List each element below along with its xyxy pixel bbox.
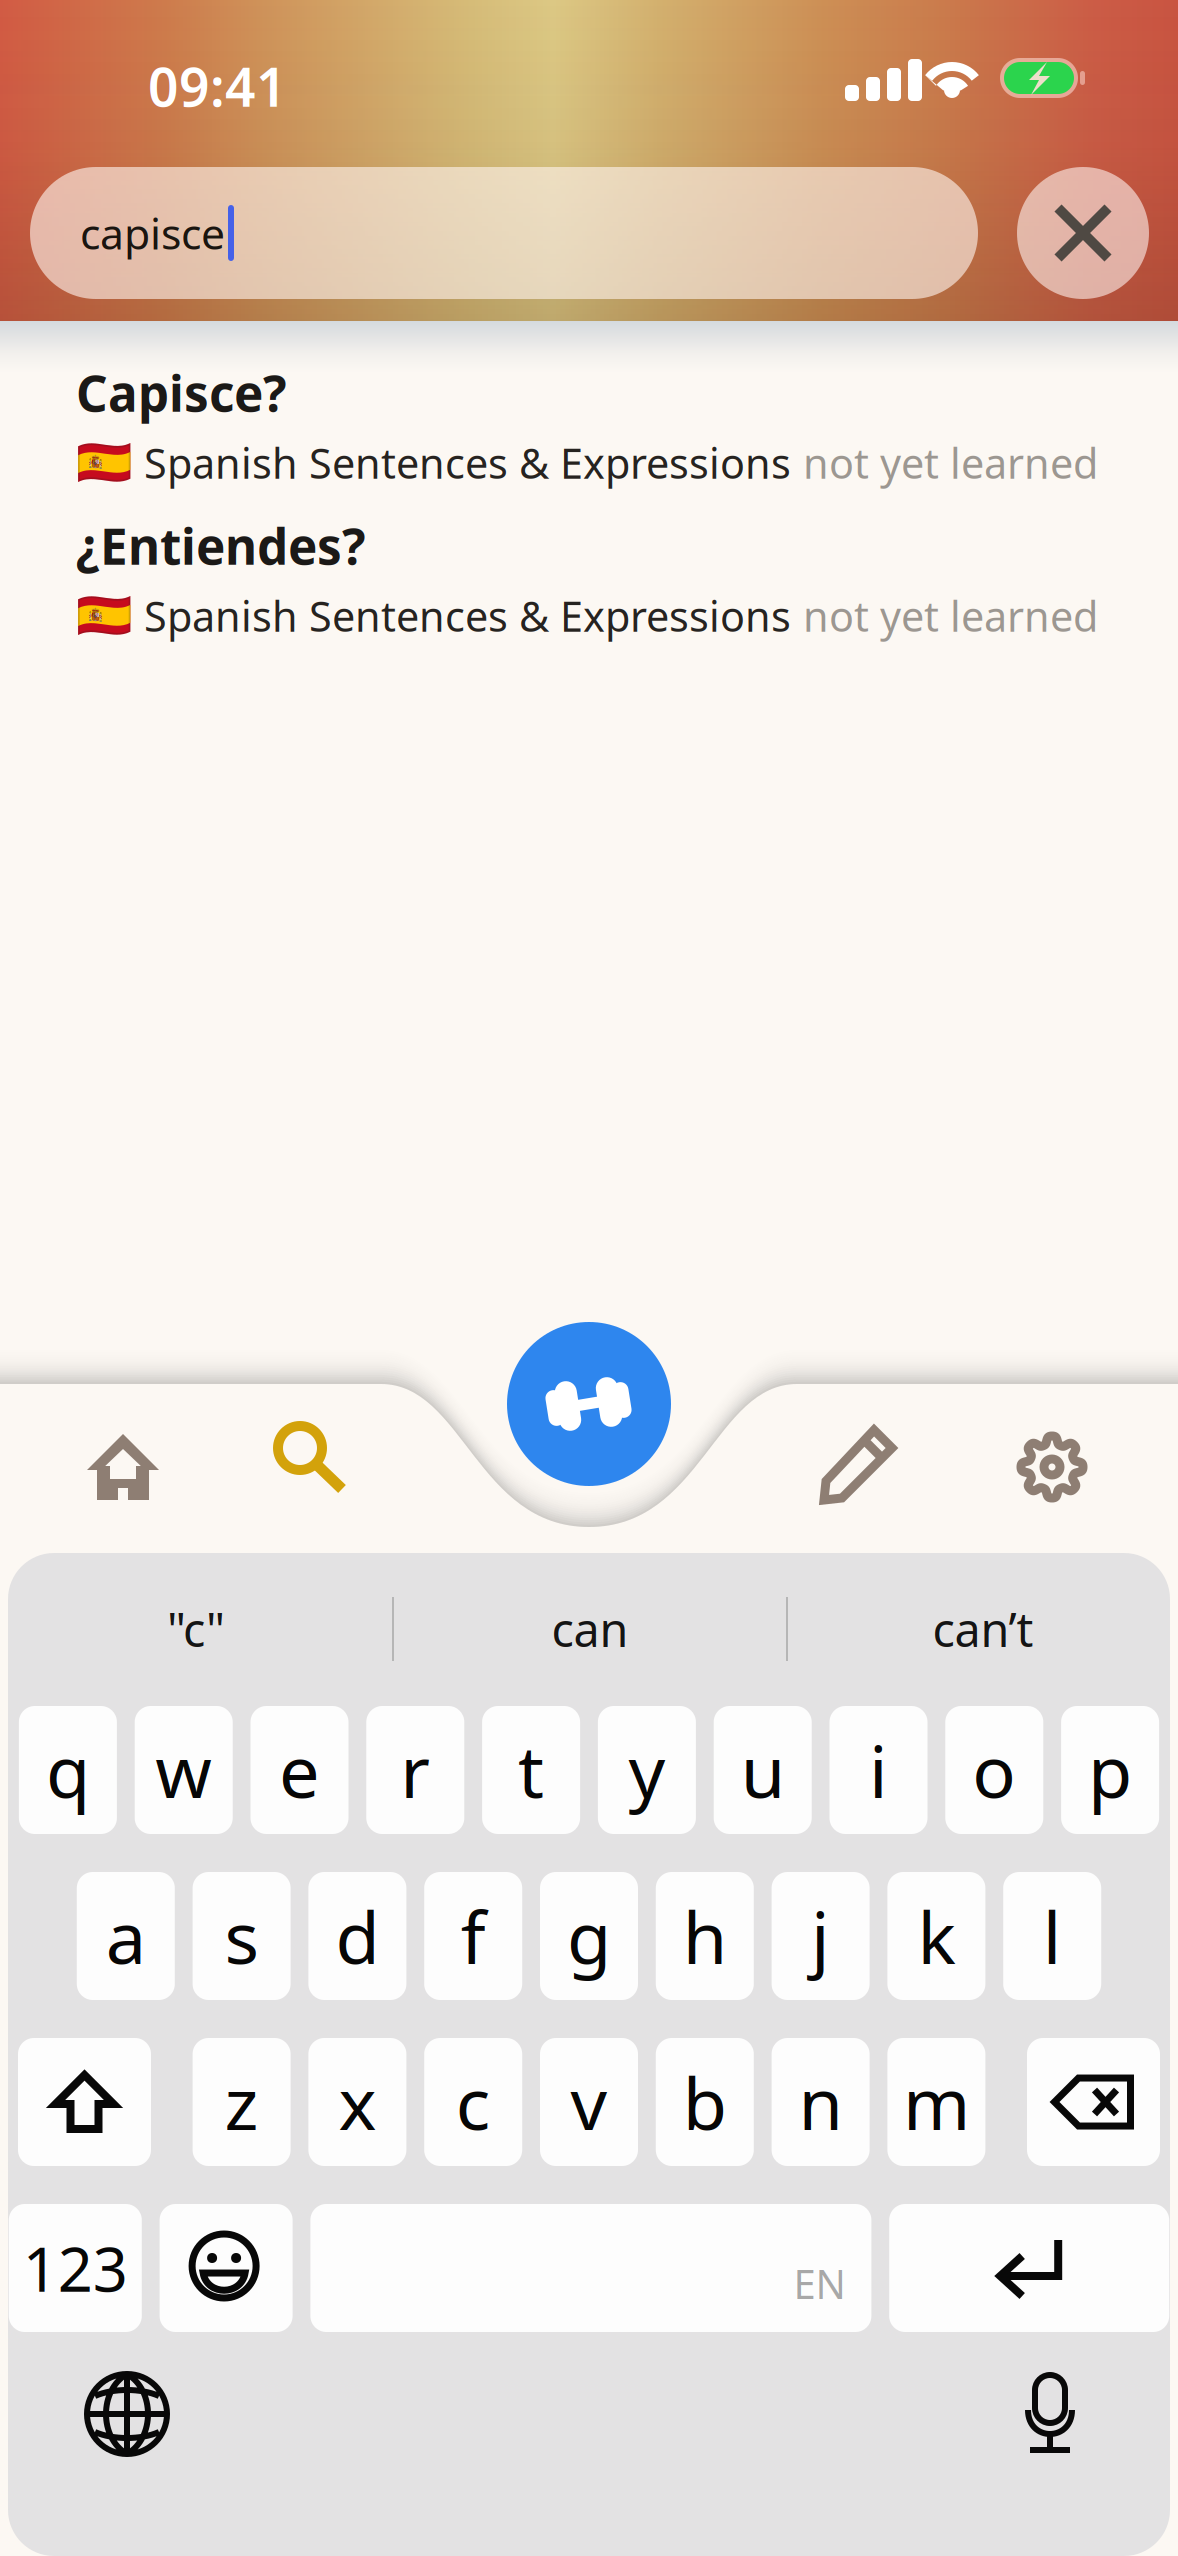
button[interactable]: Settings (1015, 1430, 1089, 1504)
button[interactable]: Write (822, 1428, 896, 1504)
staticText: o (972, 1722, 1016, 1818)
button[interactable]: x (308, 2038, 406, 2166)
button[interactable]: j (772, 1872, 870, 2000)
staticText: 09:41 (148, 51, 287, 121)
staticText: not yet learned (803, 435, 1098, 490)
button[interactable]: Search (272, 1420, 356, 1504)
button[interactable]: d (308, 1872, 406, 2000)
button[interactable]: Space (310, 2204, 871, 2332)
button[interactable]: t (482, 1706, 580, 1834)
button[interactable]: i (829, 1706, 927, 1834)
button[interactable]: Capisce? (0, 360, 1178, 490)
button[interactable]: u (714, 1706, 812, 1834)
button[interactable]: s (193, 1872, 291, 2000)
staticText: p (1088, 1722, 1132, 1818)
button[interactable]: o (945, 1706, 1043, 1834)
button[interactable]: z (193, 2038, 291, 2166)
button[interactable]: Shift (18, 2038, 151, 2166)
staticText: x (338, 2054, 376, 2150)
staticText: q (46, 1722, 90, 1818)
button[interactable]: e (250, 1706, 348, 1834)
staticText: r (400, 1722, 430, 1818)
staticText: can’t (932, 1598, 1033, 1660)
button[interactable]: w (135, 1706, 233, 1834)
staticText: s (225, 1888, 259, 1984)
staticText: a (106, 1888, 146, 1984)
staticText: capisce (80, 205, 225, 261)
button[interactable]: y (598, 1706, 696, 1834)
button[interactable]: a (77, 1872, 175, 2000)
staticText: z (225, 2054, 259, 2150)
staticText: Spanish Sentences & Expressions (144, 435, 791, 490)
staticText: 123 (23, 2227, 128, 2309)
staticText: ¿Entiendes? (76, 513, 366, 578)
button[interactable]: Emoji (160, 2204, 293, 2332)
button[interactable]: f (424, 1872, 522, 2000)
button[interactable]: k (887, 1872, 985, 2000)
staticText: d (335, 1888, 379, 1984)
button[interactable]: Start workout (507, 1322, 671, 1486)
button[interactable]: l (1003, 1872, 1101, 2000)
staticText: k (917, 1888, 955, 1984)
staticText: l (1043, 1888, 1062, 1984)
staticText: c (456, 2054, 491, 2150)
button[interactable]: ¿Entiendes? (0, 513, 1178, 643)
staticText: n (799, 2054, 843, 2150)
staticText: Spanish Sentences & Expressions (144, 588, 791, 643)
staticText: 🇪🇸 (76, 590, 132, 642)
button[interactable]: m (887, 2038, 985, 2166)
button[interactable]: Next keyboard (83, 2370, 171, 2458)
button[interactable]: b (656, 2038, 754, 2166)
staticText: u (741, 1722, 785, 1818)
button[interactable]: 123 (9, 2204, 142, 2332)
button[interactable]: n (772, 2038, 870, 2166)
button[interactable]: Dictate (1012, 2366, 1090, 2462)
staticText: Capisce? (76, 360, 287, 425)
button[interactable]: q (19, 1706, 117, 1834)
button[interactable]: p (1061, 1706, 1159, 1834)
staticText: m (903, 2054, 970, 2150)
button[interactable]: Home (87, 1434, 159, 1500)
button[interactable]: v (540, 2038, 638, 2166)
staticText: can (551, 1598, 628, 1660)
button[interactable]: c (424, 2038, 522, 2166)
staticText: f (461, 1888, 486, 1984)
staticText: e (279, 1722, 320, 1818)
button[interactable]: r (366, 1706, 464, 1834)
staticText: v (570, 2054, 607, 2150)
button[interactable]: Return (889, 2204, 1169, 2332)
button[interactable]: h (656, 1872, 754, 2000)
staticText: t (518, 1722, 544, 1818)
button[interactable]: Clear search (1017, 167, 1149, 299)
staticText: b (683, 2054, 727, 2150)
staticText: 🇪🇸 (76, 437, 132, 489)
staticText: w (155, 1722, 212, 1818)
staticText: "c" (167, 1598, 225, 1660)
staticText: j (811, 1888, 830, 1984)
staticText: y (628, 1722, 665, 1818)
staticText: g (567, 1888, 611, 1984)
staticText: EN (793, 2257, 845, 2310)
button[interactable]: g (540, 1872, 638, 2000)
staticText: i (869, 1722, 888, 1818)
staticText: h (683, 1888, 727, 1984)
button[interactable]: Delete (1027, 2038, 1160, 2166)
staticText: not yet learned (803, 588, 1098, 643)
